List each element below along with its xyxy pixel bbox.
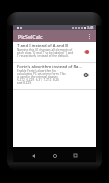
button[interactable]: Forte's algorithm instead of Rahn's bbox=[13, 63, 96, 90]
staticText: is used in the interval classes bbox=[17, 75, 58, 78]
staticText: I' respectively, instead of the default. bbox=[17, 54, 69, 57]
button[interactable]: More options bbox=[85, 32, 94, 41]
button[interactable]: Back bbox=[27, 149, 40, 162]
staticText: and 8-Z29. bbox=[17, 81, 32, 84]
staticText: pitch class 'O and T' to be labeled 'T a… bbox=[17, 51, 74, 54]
button[interactable]: Recent apps bbox=[69, 149, 82, 162]
staticText: 3:48 bbox=[87, 26, 94, 30]
staticText: Naming this UI changes all elements of bbox=[17, 48, 73, 51]
button[interactable]: T and I instead of A and B bbox=[13, 42, 96, 63]
staticText: T and I instead of A and B bbox=[17, 43, 69, 47]
staticText: PicSelCalc bbox=[18, 33, 43, 40]
staticText: 5-Z12, 6-Z29, 6-31, 7-Z12, 8-26, bbox=[17, 78, 60, 81]
button[interactable]: Home bbox=[48, 149, 61, 162]
staticText: Forte's algorithm instead of Rahn's bbox=[17, 64, 82, 68]
staticText: calculating PC set prime form. This bbox=[17, 72, 66, 75]
staticText: Enable Forte's algorithm for bbox=[17, 69, 57, 72]
